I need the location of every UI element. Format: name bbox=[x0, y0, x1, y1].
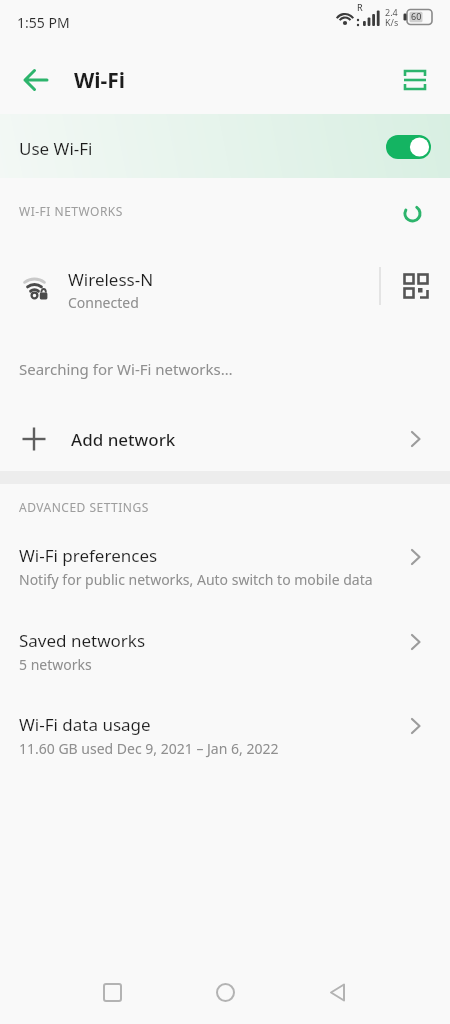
staticText: Connected bbox=[68, 293, 139, 312]
staticText: Add network bbox=[71, 428, 176, 451]
button[interactable] bbox=[293, 965, 383, 1021]
button[interactable] bbox=[394, 263, 438, 307]
button[interactable]: Saved networks bbox=[0, 617, 450, 683]
staticText: 5 networks bbox=[19, 655, 92, 674]
button[interactable]: Wi-Fi preferences bbox=[0, 532, 450, 598]
staticText: Wi-Fi bbox=[74, 66, 126, 95]
staticText: 1:55 PM bbox=[17, 13, 70, 32]
button[interactable]: Use Wi-Fi bbox=[0, 114, 450, 178]
staticText: 2.4 bbox=[385, 6, 398, 18]
staticText: 60 bbox=[411, 10, 422, 22]
staticText: Wireless-N bbox=[68, 268, 154, 291]
staticText: Notify for public networks, Auto switch … bbox=[19, 570, 373, 589]
button[interactable] bbox=[0, 252, 450, 318]
button[interactable]: Wi-Fi data usage bbox=[0, 701, 450, 767]
staticText: Saved networks bbox=[19, 629, 146, 652]
staticText: Use Wi-Fi bbox=[19, 137, 93, 160]
staticText: R bbox=[357, 1, 363, 13]
button[interactable] bbox=[12, 60, 56, 100]
button[interactable] bbox=[180, 965, 270, 1021]
staticText: Searching for Wi-Fi networks… bbox=[19, 359, 233, 379]
button[interactable] bbox=[67, 965, 157, 1021]
staticText: 11.60 GB used Dec 9, 2021 – Jan 6, 2022 bbox=[19, 739, 279, 758]
button[interactable]: Add network bbox=[0, 412, 450, 466]
staticText: Wi-Fi preferences bbox=[19, 544, 158, 567]
staticText: WI-FI NETWORKS bbox=[19, 203, 123, 219]
button[interactable] bbox=[394, 60, 436, 100]
staticText: ADVANCED SETTINGS bbox=[19, 499, 149, 515]
staticText: Wi-Fi data usage bbox=[19, 713, 151, 736]
staticText: K/s bbox=[385, 16, 399, 28]
